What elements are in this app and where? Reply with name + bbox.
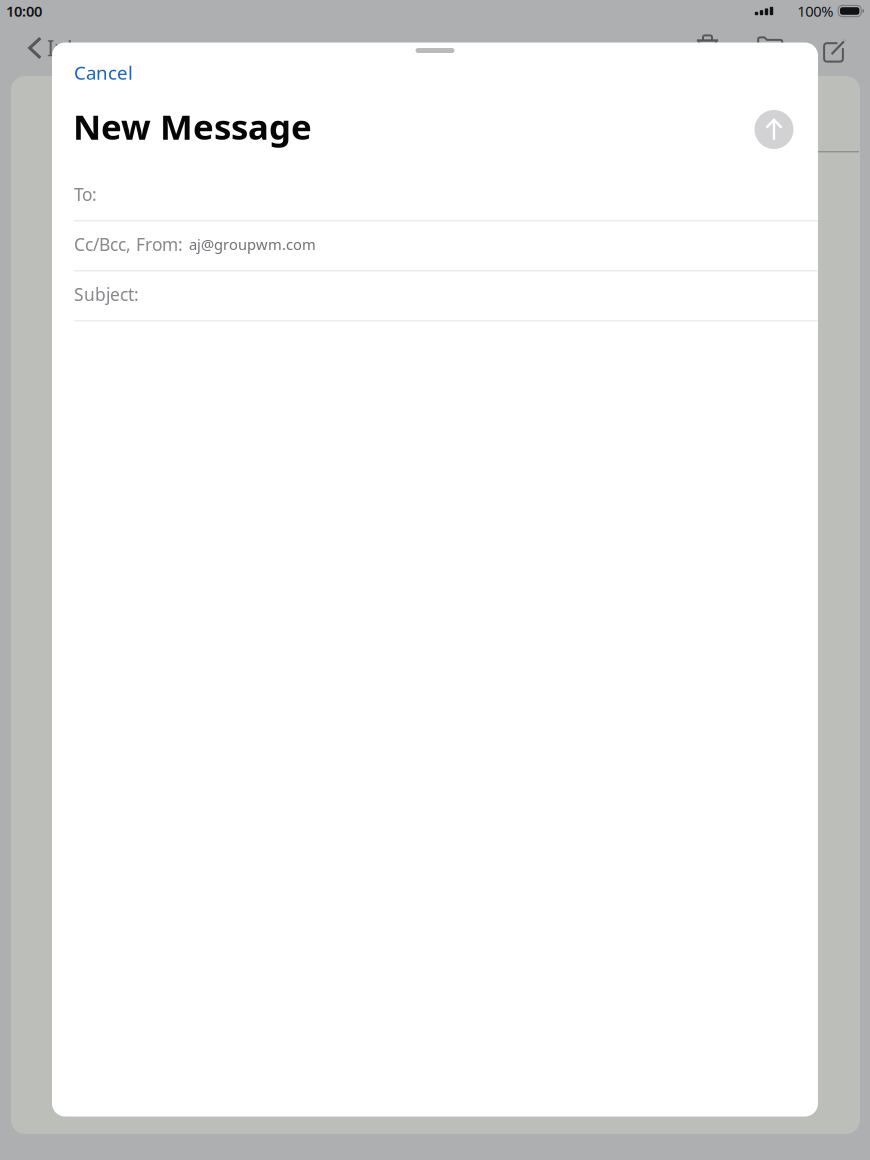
button[interactable]: Inbox (28, 34, 103, 62)
staticText: 10:00 (6, 1, 42, 21)
staticText: Cancel (74, 60, 133, 85)
staticText: To: (74, 183, 97, 206)
button[interactable]: Subject: (74, 271, 818, 321)
staticText: 100% (797, 1, 833, 21)
staticText: Subject: (74, 283, 139, 306)
button[interactable]: Cancel (74, 60, 133, 85)
staticText: Inbox (47, 34, 103, 62)
button[interactable]: To: (74, 171, 818, 221)
button[interactable]: Cc/Bcc, From: (74, 221, 818, 271)
button[interactable]: Delete (696, 33, 719, 56)
button[interactable]: Move to folder (757, 36, 783, 56)
staticText: Cc/Bcc, From: (74, 233, 183, 256)
staticText: aj@groupwm.com (189, 235, 316, 254)
button[interactable]: Send (752, 107, 796, 151)
staticText: New Message (73, 103, 312, 149)
button[interactable]: New message (823, 39, 847, 64)
